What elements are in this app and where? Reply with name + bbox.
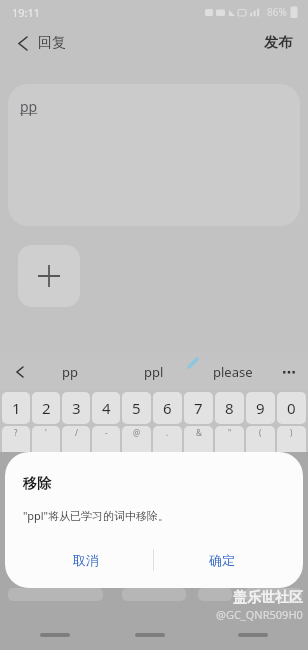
staticText: pp [62,363,78,381]
staticText: & [196,427,202,438]
staticText: - [105,427,108,438]
button[interactable] [18,245,80,307]
staticText: " [228,427,232,438]
staticText: 1 [12,398,21,418]
button[interactable]: 8 [215,392,244,424]
staticText: pp [20,97,38,116]
staticText: 19:11 [12,5,41,20]
staticText: @GC_QNR509H0 [216,607,303,622]
button[interactable]: 2 [32,392,60,424]
staticText: ) [290,427,293,438]
button[interactable]: pp [62,353,78,390]
staticText: ( [259,427,262,438]
staticText: please [213,363,253,381]
staticText: 3 [72,398,81,418]
staticText: 86% [267,5,287,19]
button[interactable]: 7 [184,392,213,424]
button[interactable] [238,633,268,637]
staticText: 9 [256,398,265,418]
staticText: 5 [132,398,141,418]
button[interactable]: 5 [122,392,151,424]
button[interactable]: 确定 [154,542,289,578]
button[interactable]: 取消 [19,542,153,578]
staticText: 确定 [209,552,235,568]
staticText: 6 [163,398,172,418]
button[interactable]: pp [8,84,300,226]
staticText: 4 [102,398,111,418]
staticText: 发布 [264,34,292,52]
staticText: ? [14,427,18,438]
button[interactable]: ⋯ [282,364,296,380]
button[interactable]: 发布 [264,34,292,52]
button[interactable] [135,633,165,637]
button[interactable]: 3 [62,392,90,424]
staticText: . [166,427,169,438]
staticText: 8 [225,398,234,418]
button[interactable]: 6 [153,392,182,424]
staticText: 移除 [23,475,51,493]
button[interactable] [40,633,70,637]
staticText: 取消 [73,552,99,568]
staticText: @ [133,427,141,438]
staticText: "ppl"将从已学习的词中移除。 [23,508,170,523]
button[interactable]: ppl [144,353,164,390]
button[interactable] [8,361,30,383]
staticText: 2 [42,398,51,418]
button[interactable]: 9 [246,392,275,424]
staticText: ppl [144,363,164,381]
staticText: 回复 [38,34,66,52]
staticText: / [75,427,78,438]
button[interactable]: 4 [92,392,120,424]
button[interactable] [9,30,35,56]
staticText: ' [45,427,47,438]
button[interactable]: please [213,353,253,390]
button[interactable]: 0 [277,392,306,424]
staticText: 7 [194,398,203,418]
staticText: 盖乐世社区 [233,589,303,607]
staticText: 0 [287,398,296,418]
button[interactable]: 1 [2,392,30,424]
